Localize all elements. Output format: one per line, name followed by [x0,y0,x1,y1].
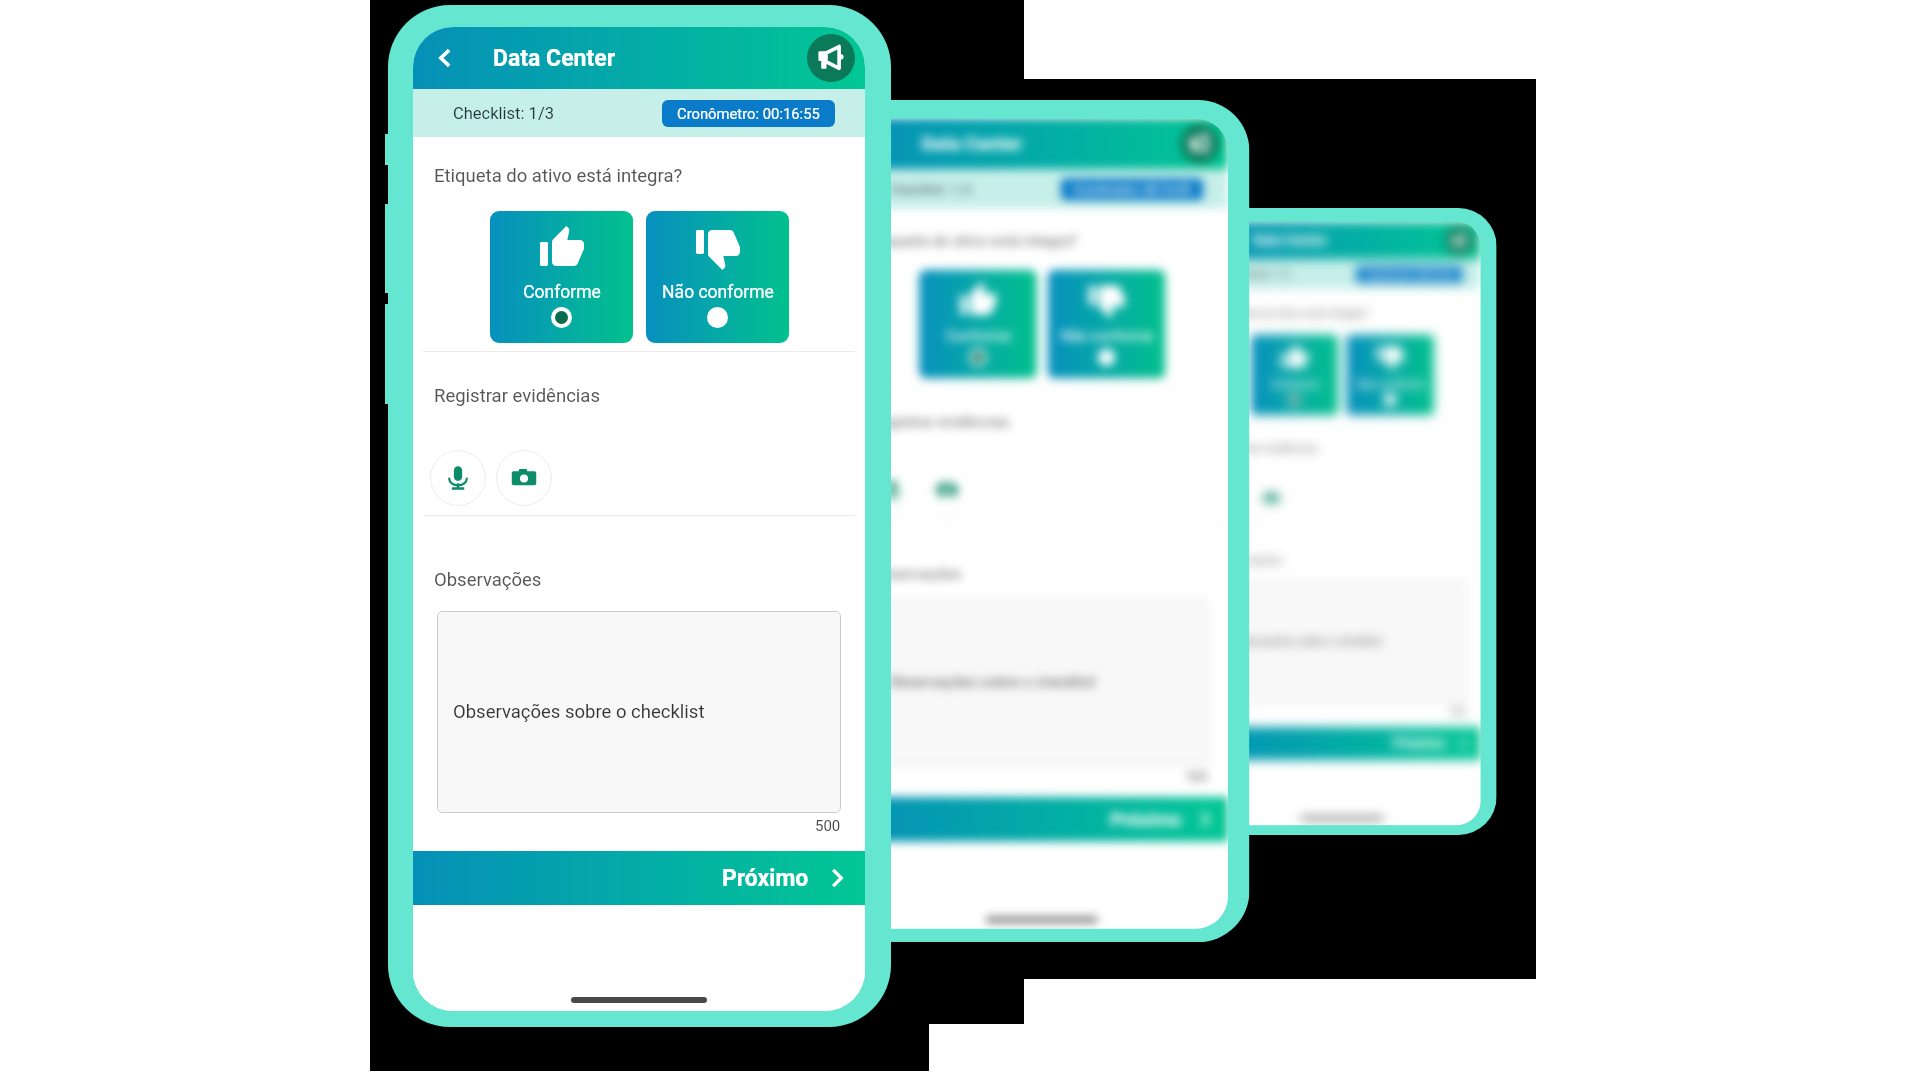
staticText: Próximo [1393,736,1446,752]
staticText: 500 [1450,706,1466,717]
button[interactable]: Cronômetro: 00:16:55 [1061,178,1203,200]
staticText: Próximo [1110,809,1182,831]
staticText: Registrar evidências [1216,441,1318,455]
button[interactable]: Record audio [870,467,916,513]
staticText: Observações [434,569,542,591]
staticText: 500 [1187,769,1208,784]
button[interactable]: Announcements [807,34,855,82]
button[interactable]: Record audio [1214,481,1248,515]
button[interactable]: Não conforme [1048,270,1165,378]
button[interactable]: Announcements [1445,226,1474,255]
staticText: Observações [1216,554,1282,567]
button[interactable]: Take photo [924,467,970,513]
button[interactable]: Take photo [1254,481,1289,515]
button[interactable]: Observações sobre o checklist [437,611,841,813]
button[interactable]: Cronômetro: 00:16:55 [1356,266,1462,283]
staticText: Registrar evidências [434,385,600,407]
staticText: Data Center [493,45,616,72]
button[interactable]: Conforme [919,270,1037,378]
staticText: Conforme [523,282,601,303]
staticText: Não conforme [1061,328,1153,345]
button[interactable]: Próximo [413,851,865,905]
button[interactable]: Conforme [1251,334,1338,415]
staticText: Registrar evidências [873,413,1010,431]
staticText: Não conforme [662,282,774,303]
staticText: Conforme [946,328,1010,345]
button[interactable]: Cronômetro: 00:16:55 [662,100,835,127]
staticText: Checklist: 1/3 [889,182,972,197]
button[interactable]: Observações sobre o checklist [875,599,1208,766]
staticText: Observações [873,565,962,583]
button[interactable]: Take photo [496,450,552,506]
button[interactable]: Não conforme [1346,334,1434,415]
staticText: Checklist: 1/3 [453,104,554,123]
staticText: Cronômetro: 00:16:55 [677,105,820,122]
button[interactable]: Back [423,36,467,80]
button[interactable]: Observações sobre o checklist [1218,580,1466,704]
staticText: Cronômetro: 00:16:55 [1073,182,1191,196]
staticText: Etiqueta do ativo está integra? [434,165,683,187]
staticText: Observações sobre o checklist [453,701,705,723]
staticText: Checklist: 1/3 [1228,269,1290,280]
staticText: Próximo [722,865,809,892]
staticText: Data Center [1252,232,1328,249]
staticText: Data Center [921,133,1023,155]
staticText: Conforme [1271,378,1319,391]
staticText: Não conforme [1356,378,1425,391]
staticText: 500 [815,817,841,835]
button[interactable]: Back [1209,227,1236,254]
staticText: Cronômetro: 00:16:55 [1365,269,1453,280]
button[interactable]: Conforme [490,211,633,343]
staticText: Etiqueta do ativo está integra? [1216,306,1369,320]
button[interactable]: Não conforme [646,211,789,343]
staticText: Observações sobre o checklist [889,673,1096,691]
button[interactable]: Back [864,125,900,162]
button[interactable]: Próximo [856,797,1228,841]
button[interactable]: Próximo [1203,727,1481,760]
staticText: Etiqueta do ativo está integra? [873,232,1078,250]
staticText: Observações sobre o checklist [1228,635,1382,648]
button[interactable]: Record audio [430,450,486,506]
button[interactable]: Announcements [1180,124,1220,163]
